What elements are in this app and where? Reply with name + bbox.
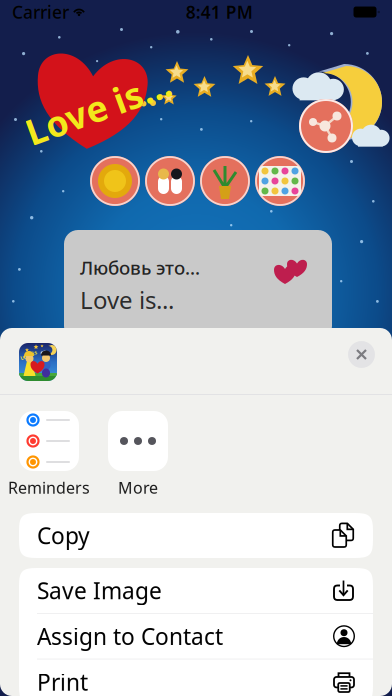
staticText: Любовь это...	[80, 255, 200, 280]
button[interactable]: Assign to Contact	[19, 614, 373, 659]
staticText: 8:41 PM	[186, 0, 253, 23]
button[interactable]: More	[93, 411, 183, 498]
staticText: Copy	[37, 520, 90, 550]
staticText: Love is	[20, 351, 38, 359]
staticText: Reminders	[8, 477, 90, 498]
button[interactable]: Love is app	[19, 343, 57, 381]
staticText: Carrier	[12, 0, 69, 23]
button[interactable]: Copy	[19, 513, 373, 558]
staticText: Save Image	[37, 575, 162, 605]
staticText: Love is...	[22, 82, 174, 130]
button[interactable]: Reminders	[4, 411, 94, 498]
staticText: More	[118, 477, 158, 498]
staticText: Print	[37, 667, 88, 696]
staticText: Love is...	[80, 284, 174, 316]
button[interactable]: Save Image	[19, 568, 373, 613]
button[interactable]: Print	[19, 659, 373, 696]
button[interactable]: Close	[348, 341, 375, 368]
staticText: Assign to Contact	[37, 621, 223, 651]
